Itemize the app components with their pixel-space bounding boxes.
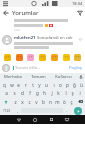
button[interactable]: e: [15, 81, 22, 89]
staticText: l: [65, 90, 67, 96]
button[interactable]: Comma: [14, 106, 21, 115]
button[interactable]: l: [62, 89, 69, 97]
button[interactable]: Backspace: [75, 97, 85, 106]
button[interactable]: q: [0, 81, 8, 89]
staticText: Yorumlar: [12, 9, 39, 17]
button[interactable]: a: [2, 89, 10, 97]
button[interactable]: Paylaş: [68, 65, 83, 71]
button[interactable]: Hide keyboard: [59, 115, 75, 124]
button[interactable]: Emoji: [38, 53, 47, 62]
button[interactable]: Kullanıcı: [51, 73, 76, 81]
button[interactable]: Back: [0, 7, 11, 18]
button[interactable]: Profile photo: [2, 35, 12, 45]
staticText: i: [79, 90, 81, 96]
button[interactable]: Recents: [43, 115, 59, 124]
staticText: k: [57, 90, 60, 96]
button[interactable]: v: [33, 97, 40, 106]
button[interactable]: Emoji: [73, 53, 82, 62]
button[interactable]: z: [11, 97, 19, 106]
button[interactable]: Emoji: [15, 53, 24, 62]
button[interactable]: ?123: [0, 106, 14, 115]
button[interactable]: x: [19, 97, 26, 106]
staticText: n: [49, 99, 52, 105]
button[interactable]: y: [36, 81, 43, 89]
button[interactable]: ı: [50, 81, 57, 89]
button[interactable]: j: [48, 89, 55, 97]
button[interactable]: Emoji: [3, 53, 12, 62]
button[interactable]: Send: [70, 106, 85, 115]
button[interactable]: w: [8, 81, 15, 89]
button[interactable]: k: [55, 89, 62, 97]
staticText: h: [43, 90, 46, 96]
staticText: ş: [71, 90, 74, 96]
staticText: z: [14, 99, 17, 105]
button[interactable]: r: [22, 81, 29, 89]
staticText: q: [3, 82, 6, 88]
staticText: Tamam: [31, 74, 46, 80]
staticText: ?123: [3, 108, 11, 113]
staticText: ı: [53, 82, 55, 88]
button[interactable]: Voice input: [76, 73, 85, 81]
button[interactable]: m: [54, 97, 61, 106]
staticText: w: [10, 82, 14, 88]
button[interactable]: p: [64, 81, 71, 89]
staticText: j: [51, 90, 53, 96]
staticText: e: [17, 82, 20, 88]
staticText: Kullanıcı: [55, 74, 72, 80]
staticText: ,: [17, 108, 19, 113]
staticText: Yorum ekle...: [15, 65, 41, 71]
staticText: a: [5, 90, 8, 96]
button[interactable]: Period: [63, 106, 70, 115]
button[interactable]: Emoji: [26, 53, 35, 62]
button[interactable]: d: [18, 89, 26, 97]
staticText: r: [25, 82, 27, 88]
staticText: s: [13, 90, 16, 96]
staticText: 18:04: [72, 1, 83, 6]
button[interactable]: i: [76, 89, 83, 97]
button[interactable]: ü: [78, 81, 85, 89]
staticText: m: [55, 99, 60, 105]
button[interactable]: n: [47, 97, 54, 106]
button[interactable]: t: [29, 81, 36, 89]
staticText: x: [21, 99, 24, 105]
staticText: Paylaş: [69, 65, 82, 71]
button[interactable]: Emoji: [62, 53, 71, 62]
button[interactable]: h: [41, 89, 48, 97]
button[interactable]: Merhaba: [0, 73, 26, 81]
button[interactable]: Shift: [0, 97, 11, 106]
staticText: p: [66, 82, 69, 88]
staticText: v: [35, 99, 38, 105]
staticText: b: [42, 99, 45, 105]
button[interactable]: ö: [61, 97, 68, 106]
button[interactable]: s: [10, 89, 18, 97]
staticText: u: [45, 82, 48, 88]
staticText: mlutfen21: [14, 35, 36, 41]
button[interactable]: f: [26, 89, 34, 97]
button[interactable]: o: [57, 81, 64, 89]
staticText: ğ: [73, 82, 76, 88]
button[interactable]: Back: [11, 115, 27, 124]
button[interactable]: Home: [27, 115, 43, 124]
staticText: Sonuclandi en cok: [37, 35, 73, 41]
staticText: c: [28, 99, 31, 105]
staticText: f: [29, 90, 31, 96]
button[interactable]: Yorum ekle...: [13, 64, 68, 72]
staticText: d: [21, 90, 24, 96]
button[interactable]: ğ: [71, 81, 78, 89]
button[interactable]: Filter: [74, 7, 85, 18]
button[interactable]: u: [43, 81, 50, 89]
button[interactable]: Emoji: [50, 53, 59, 62]
staticText: .: [66, 108, 68, 113]
button[interactable]: ş: [69, 89, 76, 97]
staticText: ö: [63, 99, 66, 105]
button[interactable]: g: [34, 89, 41, 97]
button[interactable]: ç: [68, 97, 75, 106]
button[interactable]: Like: [78, 37, 82, 41]
staticText: g: [36, 90, 39, 96]
staticText: ç: [70, 99, 73, 105]
button[interactable]: c: [26, 97, 33, 106]
button[interactable]: Tamam: [26, 73, 51, 81]
staticText: o: [59, 82, 62, 88]
button[interactable]: b: [40, 97, 47, 106]
